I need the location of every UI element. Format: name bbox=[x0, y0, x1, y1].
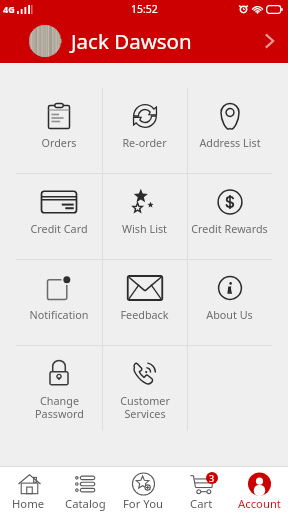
button[interactable]: For You bbox=[114, 467, 172, 512]
staticText: 15:52 bbox=[131, 2, 158, 16]
button[interactable]: Wish List bbox=[102, 174, 187, 259]
button[interactable]: Account bbox=[230, 467, 288, 512]
staticText: Address List bbox=[199, 135, 261, 150]
staticText: Feedback bbox=[120, 307, 169, 322]
button[interactable]: 3 bbox=[172, 467, 230, 512]
button[interactable]: About Us bbox=[187, 260, 272, 345]
staticText: Catalog bbox=[65, 496, 106, 511]
button[interactable]: Orders bbox=[16, 88, 102, 173]
button[interactable]: Jack Dawson bbox=[0, 18, 288, 63]
button[interactable]: Change Password bbox=[16, 346, 102, 431]
staticText: Credit Rewards bbox=[191, 221, 268, 236]
button[interactable]: Customer Services bbox=[102, 346, 187, 431]
button[interactable]: Catalog bbox=[57, 467, 114, 512]
button[interactable]: Credit Card bbox=[16, 174, 102, 259]
button[interactable]: Credit Rewards bbox=[187, 174, 272, 259]
staticText: Re-order bbox=[122, 135, 167, 150]
button[interactable]: Address List bbox=[187, 88, 272, 173]
staticText: 3 bbox=[209, 472, 215, 484]
button[interactable]: Home bbox=[0, 467, 57, 512]
button[interactable]: Feedback bbox=[102, 260, 187, 345]
staticText: Cart bbox=[190, 496, 213, 511]
staticText: About Us bbox=[206, 307, 253, 322]
other: Open profile bbox=[261, 33, 277, 49]
staticText: 4G bbox=[3, 3, 15, 15]
staticText: Home bbox=[12, 496, 45, 511]
staticText: Customer Services bbox=[120, 393, 170, 421]
button[interactable]: Re-order bbox=[102, 88, 187, 173]
staticText: Wish List bbox=[122, 221, 167, 236]
staticText: Jack Dawson bbox=[71, 27, 192, 55]
staticText: Notification bbox=[29, 307, 89, 322]
button[interactable]: Notification bbox=[16, 260, 102, 345]
staticText: Change Password bbox=[35, 393, 84, 421]
staticText: For You bbox=[123, 496, 163, 511]
staticText: Credit Card bbox=[30, 221, 88, 236]
staticText: Orders bbox=[41, 135, 77, 150]
staticText: Account bbox=[238, 496, 281, 511]
